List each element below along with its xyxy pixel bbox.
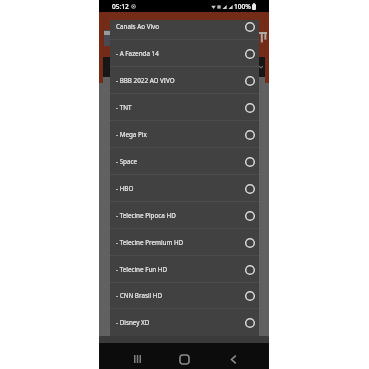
staticText: - Space bbox=[116, 157, 138, 166]
staticText: - Telecine Fun HD bbox=[116, 265, 168, 274]
staticText: 05:12 bbox=[112, 2, 129, 11]
button[interactable]: - Telecine Pipoca HD bbox=[110, 202, 259, 229]
staticText: - Mega Pix bbox=[116, 130, 147, 139]
button[interactable]: Back bbox=[223, 349, 243, 369]
button[interactable]: - BBB 2022 AO VIVO bbox=[110, 67, 259, 94]
button[interactable]: - TNT bbox=[110, 94, 259, 121]
button[interactable]: - Mega Pix bbox=[110, 121, 259, 148]
button[interactable]: - A Fazenda 14 bbox=[110, 40, 259, 67]
staticText: - CNN Brasil HD bbox=[116, 291, 163, 300]
button[interactable]: - CNN Brasil HD bbox=[110, 282, 259, 309]
staticText: 100% bbox=[234, 2, 251, 11]
button[interactable]: - Space bbox=[110, 148, 259, 175]
staticText: - Telecine Pipoca HD bbox=[116, 211, 176, 220]
staticText: - BBB 2022 AO VIVO bbox=[116, 76, 175, 85]
staticText: - Disney XD bbox=[116, 318, 150, 327]
staticText: - Telecine Premium HD bbox=[116, 238, 184, 247]
button[interactable]: Recents bbox=[127, 349, 147, 369]
staticText: Canais Ao Vivo bbox=[116, 22, 160, 31]
button[interactable]: - HBO bbox=[110, 175, 259, 202]
button[interactable]: - Telecine Premium HD bbox=[110, 229, 259, 256]
staticText: - HBO bbox=[116, 184, 134, 193]
button[interactable]: Canais Ao Vivo bbox=[110, 20, 259, 40]
button[interactable]: - Disney XD bbox=[110, 309, 259, 336]
staticText: - TNT bbox=[116, 103, 132, 112]
staticText: - A Fazenda 14 bbox=[116, 49, 159, 58]
button[interactable]: Home bbox=[174, 349, 194, 369]
button[interactable]: - Telecine Fun HD bbox=[110, 256, 259, 283]
